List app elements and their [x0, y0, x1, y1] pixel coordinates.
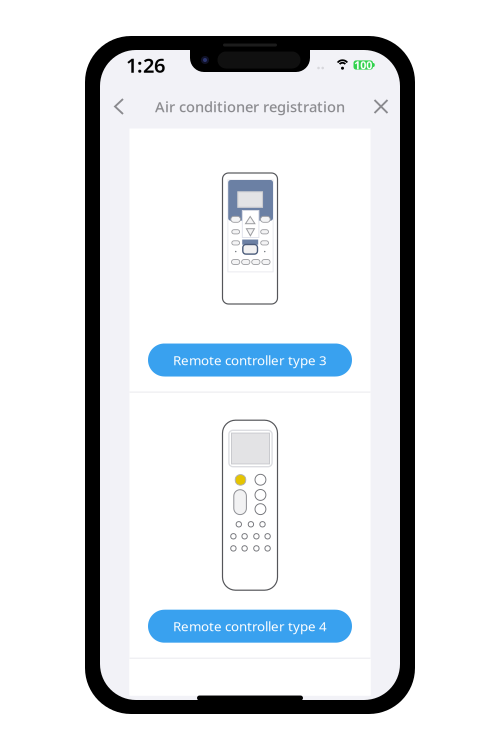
staticText: Air conditioner registration [155, 97, 345, 116]
button[interactable]: Back [104, 89, 134, 123]
button[interactable]: Remote controller type 4 [148, 610, 352, 643]
staticText: 1:26 [126, 52, 165, 78]
staticText: Remote controller type 4 [173, 617, 327, 635]
button[interactable]: Close [366, 89, 396, 123]
staticText: 100 [354, 58, 372, 72]
staticText: Remote controller type 3 [173, 351, 327, 369]
button[interactable]: Remote controller type 3 [148, 343, 352, 376]
